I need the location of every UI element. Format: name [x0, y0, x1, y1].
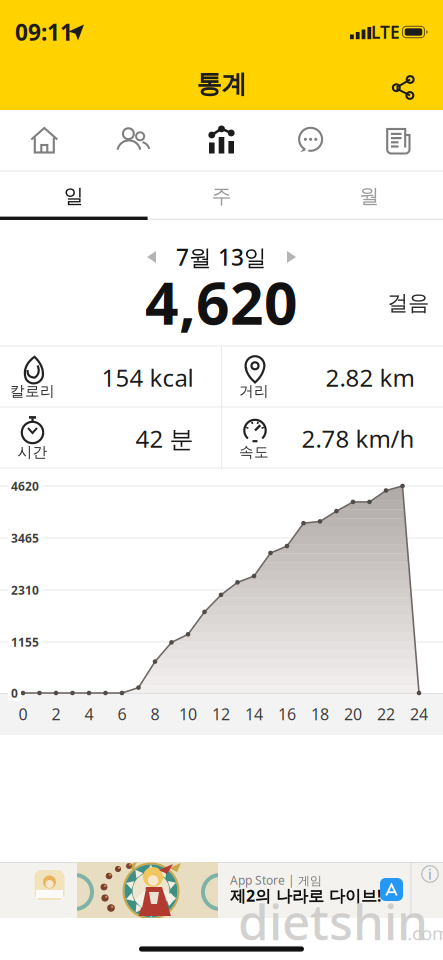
button[interactable]: 일 [0, 172, 148, 220]
button[interactable]: 뉴스 [355, 110, 443, 170]
staticText: 8 [150, 703, 159, 725]
button[interactable]: 공유 [383, 62, 427, 106]
button[interactable]: 이전 날짜 [130, 235, 174, 279]
staticText: 속도 [239, 443, 269, 461]
staticText: 2310 [11, 582, 39, 598]
staticText: 7월 13일 [176, 242, 267, 272]
button[interactable]: 광고 정보 [419, 863, 441, 885]
staticText: 2.78 km/h [301, 423, 414, 454]
staticText: 걸음 [387, 290, 429, 316]
staticText: .com [407, 921, 443, 945]
staticText: 칼로리 [10, 382, 55, 400]
button[interactable]: 통계 [177, 110, 265, 170]
staticText: 3465 [11, 530, 39, 546]
staticText: 10 [179, 703, 197, 725]
staticText: 42 분 [135, 423, 193, 454]
staticText: 0 [11, 685, 18, 701]
button[interactable]: 주 [148, 172, 295, 220]
staticText: 일 [64, 184, 84, 208]
staticText: 4 [84, 703, 93, 725]
button[interactable]: 광고: 제2의 나라로 다이브 [0, 862, 443, 918]
staticText: 22 [377, 703, 395, 725]
staticText: 0 [18, 703, 27, 725]
button[interactable]: 홈 [0, 110, 88, 170]
staticText: 4620 [11, 478, 39, 494]
button[interactable]: 친구 [89, 110, 177, 170]
button[interactable]: 채팅 [266, 110, 354, 170]
staticText: 154 kcal [101, 362, 193, 393]
staticText: 시간 [17, 443, 47, 461]
staticText: 4,620 [145, 263, 298, 341]
staticText: i [428, 864, 432, 884]
staticText: 16 [278, 703, 296, 725]
staticText: 20 [344, 703, 362, 725]
staticText: 18 [311, 703, 329, 725]
staticText: 거리 [239, 382, 269, 400]
staticText: dietshin [238, 888, 428, 954]
staticText: 2 [51, 703, 60, 725]
staticText: App Store | 게임 [230, 872, 322, 888]
staticText: 24 [410, 703, 428, 725]
staticText: 6 [117, 703, 126, 725]
staticText: 주 [211, 184, 231, 208]
staticText: 14 [245, 703, 263, 725]
button[interactable]: 월 [295, 172, 443, 220]
staticText: LTE [371, 20, 400, 43]
staticText: 1155 [11, 634, 39, 650]
staticText: 2.82 km [325, 362, 414, 393]
staticText: 월 [359, 184, 379, 208]
staticText: 09:11 [15, 17, 73, 47]
staticText: 제2의 나라로 다이브! [230, 885, 382, 906]
button[interactable]: 다음 날짜 [269, 235, 313, 279]
staticText: 통계 [196, 68, 246, 99]
staticText: 12 [212, 703, 230, 725]
